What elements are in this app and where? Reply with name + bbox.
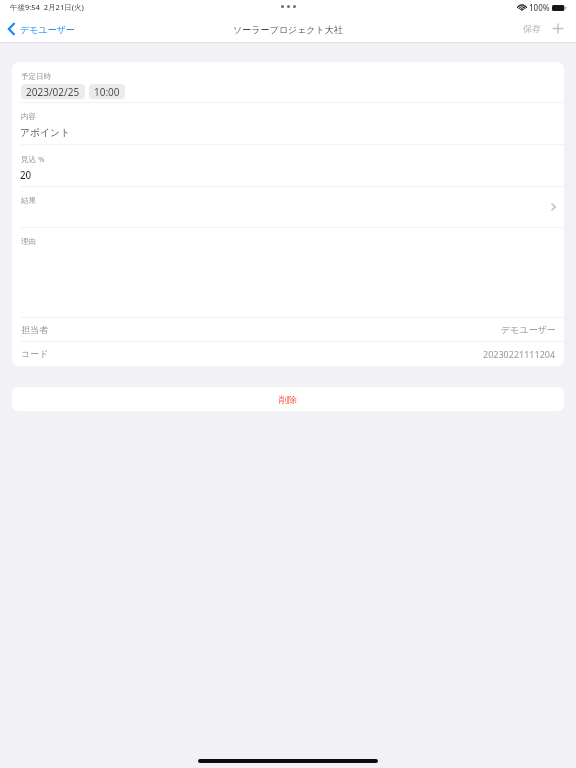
button[interactable]: 担当者 <box>12 317 564 341</box>
staticText: デモユーザー <box>20 24 75 35</box>
button[interactable]: 保存 <box>517 20 547 37</box>
staticText: 内容 <box>21 112 37 122</box>
button[interactable]: 予定日時 <box>12 62 564 102</box>
staticText: 担当者 <box>21 324 48 335</box>
staticText: 午後9:54 2月21日(火) <box>10 2 84 12</box>
button[interactable]: 削除 <box>12 387 564 411</box>
staticText: 10:00 <box>94 85 120 99</box>
button[interactable]: Add <box>547 20 568 37</box>
button[interactable]: デモユーザー <box>0 22 83 38</box>
button[interactable]: コード <box>12 341 564 366</box>
staticText: 100% <box>529 2 550 13</box>
button[interactable]: 2023/02/25 <box>21 84 85 99</box>
button[interactable]: 見込 % <box>12 144 564 186</box>
staticText: 結果 <box>21 196 37 206</box>
staticText: ソーラープロジェクト大社 <box>233 24 343 35</box>
staticText: 保存 <box>523 23 541 34</box>
staticText: デモユーザー <box>501 324 556 335</box>
staticText: 2023/02/25 <box>26 85 80 99</box>
staticText: 見込 % <box>21 154 45 164</box>
button[interactable]: 10:00 <box>89 84 125 99</box>
staticText: 20230221111204 <box>483 348 556 360</box>
staticText: 削除 <box>279 394 297 405</box>
staticText: コード <box>21 348 49 359</box>
staticText: 理由 <box>21 237 37 247</box>
staticText: 予定日時 <box>21 72 52 82</box>
staticText: 20 <box>20 169 32 182</box>
staticText: アポイント <box>20 127 71 139</box>
button[interactable]: 結果 <box>12 186 564 227</box>
button[interactable]: 内容 <box>12 102 564 144</box>
